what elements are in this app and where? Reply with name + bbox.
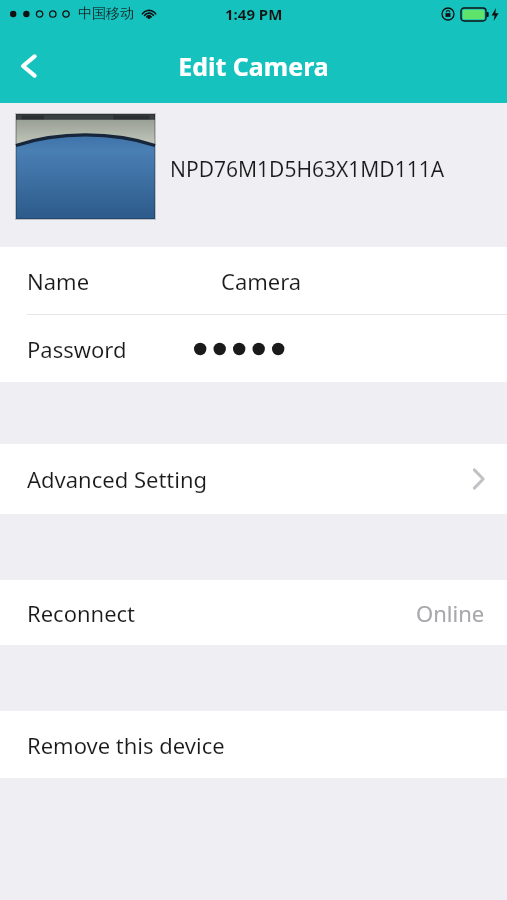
staticText: Name (27, 266, 90, 296)
staticText: Password (27, 334, 127, 364)
button[interactable]: Remove this device (0, 711, 507, 778)
staticText: 1:49 PM (225, 4, 283, 24)
staticText: 中国移动 (78, 5, 134, 23)
staticText: Remove this device (27, 730, 225, 760)
button[interactable]: Advanced Setting (0, 444, 507, 514)
button[interactable]: Password (0, 315, 507, 382)
button[interactable]: Reconnect (0, 580, 507, 645)
staticText: Camera (221, 266, 302, 296)
button[interactable]: Name (0, 247, 507, 314)
staticText: Edit Camera (178, 49, 329, 83)
staticText: Reconnect (27, 598, 136, 628)
button[interactable]: Back (0, 37, 58, 95)
staticText: Advanced Setting (27, 464, 208, 494)
staticText: Online (416, 598, 485, 628)
staticText: NPD76M1D5H63X1MD111A (170, 155, 445, 184)
